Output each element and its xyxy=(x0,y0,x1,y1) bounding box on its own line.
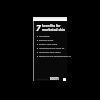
staticText: benefits for marketed skin xyxy=(42,24,66,32)
staticText: Smooths fine lines xyxy=(39,50,61,53)
staticText: 7 xyxy=(36,22,41,34)
staticText: Evens skin tone appearance xyxy=(39,42,71,46)
staticText: Hydrates xyxy=(39,34,50,37)
staticText: Boosts glow xyxy=(39,38,54,41)
staticText: Minimises the look of pores xyxy=(39,46,71,50)
staticText: Reduces the appearance of dark spots xyxy=(39,54,71,58)
staticText: available at xyxy=(37,78,49,81)
staticText: BOOTS xyxy=(50,77,59,81)
other: Brand logo xyxy=(63,78,66,81)
